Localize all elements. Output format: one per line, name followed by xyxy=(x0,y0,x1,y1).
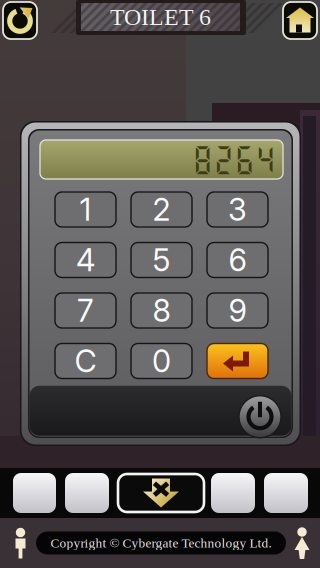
staticText: 9 xyxy=(228,292,246,329)
button[interactable]: Empty inventory slot xyxy=(65,473,109,513)
staticText: 6 xyxy=(228,241,246,278)
button[interactable]: 9 xyxy=(207,293,268,328)
button[interactable]: Empty inventory slot xyxy=(211,473,255,513)
button[interactable]: 3 xyxy=(207,192,268,227)
button[interactable]: 2 xyxy=(131,192,192,227)
button[interactable]: Enter code xyxy=(207,343,268,378)
button[interactable]: Empty inventory slot xyxy=(13,473,56,513)
staticText: 8 xyxy=(152,292,170,329)
staticText: C xyxy=(74,342,96,379)
button[interactable]: Empty inventory slot xyxy=(264,473,308,513)
staticText: 4 xyxy=(76,241,95,278)
button[interactable]: 6 xyxy=(207,242,268,277)
button[interactable]: Home xyxy=(283,2,317,39)
staticText: 3 xyxy=(228,191,247,228)
staticText: Copyright © Cybergate Technology Ltd. xyxy=(50,536,271,550)
button[interactable]: 0 xyxy=(131,343,192,378)
button[interactable]: 4 xyxy=(55,242,116,277)
button[interactable]: C xyxy=(55,343,116,378)
staticText: 5 xyxy=(152,241,170,278)
button[interactable]: Selected item xyxy=(118,474,204,512)
button[interactable]: 8 xyxy=(131,293,192,328)
button[interactable]: Restart level xyxy=(3,2,37,39)
staticText: TOILET 6 xyxy=(110,4,211,30)
button[interactable]: 7 xyxy=(55,293,116,328)
staticText: 2 xyxy=(152,191,170,228)
staticText: 1 xyxy=(79,191,91,228)
button[interactable]: Power xyxy=(239,395,281,438)
staticText: 8264 xyxy=(192,142,276,177)
button[interactable]: 1 xyxy=(55,192,116,227)
button[interactable]: 5 xyxy=(131,242,192,277)
staticText: 0 xyxy=(152,342,171,379)
staticText: 7 xyxy=(77,292,94,329)
